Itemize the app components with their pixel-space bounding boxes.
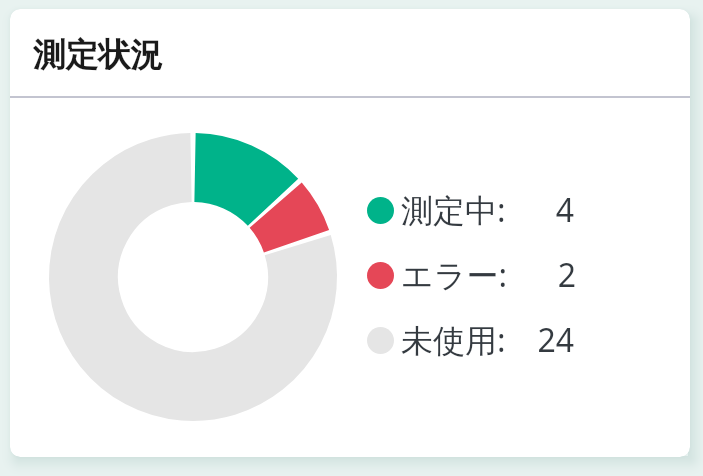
button[interactable]: エラー:: [367, 253, 576, 297]
other: エラー:: [367, 262, 394, 289]
button[interactable]: 測定中:: [367, 188, 574, 232]
other: 測定状況 円グラフ: [49, 133, 337, 421]
other: 測定中:: [367, 197, 394, 224]
staticText: 測定状況: [33, 35, 163, 76]
staticText: エラー:: [401, 253, 508, 297]
staticText: 測定中:: [401, 188, 506, 232]
staticText: 2: [508, 253, 576, 297]
staticText: 4: [506, 188, 574, 232]
other: 未使用:: [367, 327, 394, 354]
button[interactable]: 未使用:: [367, 318, 574, 362]
staticText: 未使用:: [401, 318, 506, 362]
staticText: 24: [506, 318, 574, 362]
